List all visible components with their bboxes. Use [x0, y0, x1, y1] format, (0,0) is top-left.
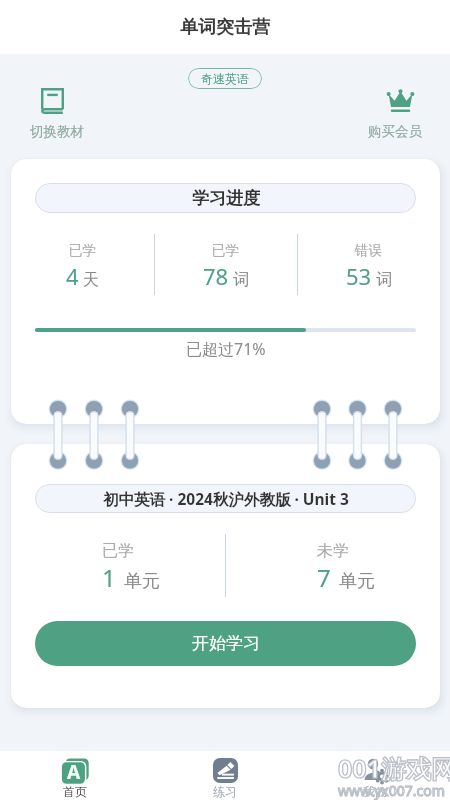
staticText: 7	[317, 561, 331, 594]
staticText: 001游戏网	[338, 751, 450, 785]
staticText: 单元	[339, 570, 375, 593]
staticText: A	[67, 759, 81, 785]
staticText: 练习	[213, 784, 237, 799]
button[interactable]: 开始学习	[35, 621, 416, 666]
staticText: 购买会员	[368, 123, 422, 140]
button[interactable]: A	[0, 751, 150, 799]
staticText: 词	[376, 270, 392, 290]
staticText: 78	[203, 261, 229, 291]
staticText: 已学	[212, 242, 239, 259]
staticText: www.yx007.com	[338, 781, 445, 800]
staticText: www.yx007.com	[338, 781, 445, 800]
staticText: 单元	[124, 570, 160, 593]
staticText: 天	[83, 270, 99, 290]
staticText: 单词突击营	[180, 16, 270, 39]
staticText: 词	[233, 270, 249, 290]
staticText: 错误	[355, 242, 382, 259]
staticText: 53	[346, 261, 372, 291]
staticText: 首页	[63, 784, 87, 799]
staticText: 已超过71%	[186, 338, 266, 360]
staticText: 已学	[69, 242, 96, 259]
button[interactable]: 奇速英语	[188, 68, 262, 89]
staticText: 001游戏网	[338, 751, 450, 785]
button[interactable]: 购买会员	[368, 89, 422, 140]
button[interactable]: 切换教材	[30, 88, 84, 140]
staticText: 4	[66, 261, 79, 291]
staticText: 我的	[363, 784, 387, 799]
staticText: 切换教材	[30, 123, 84, 140]
button[interactable]: 练习	[150, 751, 300, 799]
staticText: 未学	[317, 541, 349, 561]
staticText: 初中英语 · 2024秋沪外教版 · Unit 3	[103, 488, 349, 509]
staticText: 已学	[102, 541, 134, 561]
staticText: 1	[102, 561, 116, 594]
staticText: 学习进度	[192, 188, 260, 209]
staticText: 开始学习	[192, 633, 260, 654]
button[interactable]: 我的	[300, 751, 450, 799]
staticText: 奇速英语	[201, 71, 249, 86]
